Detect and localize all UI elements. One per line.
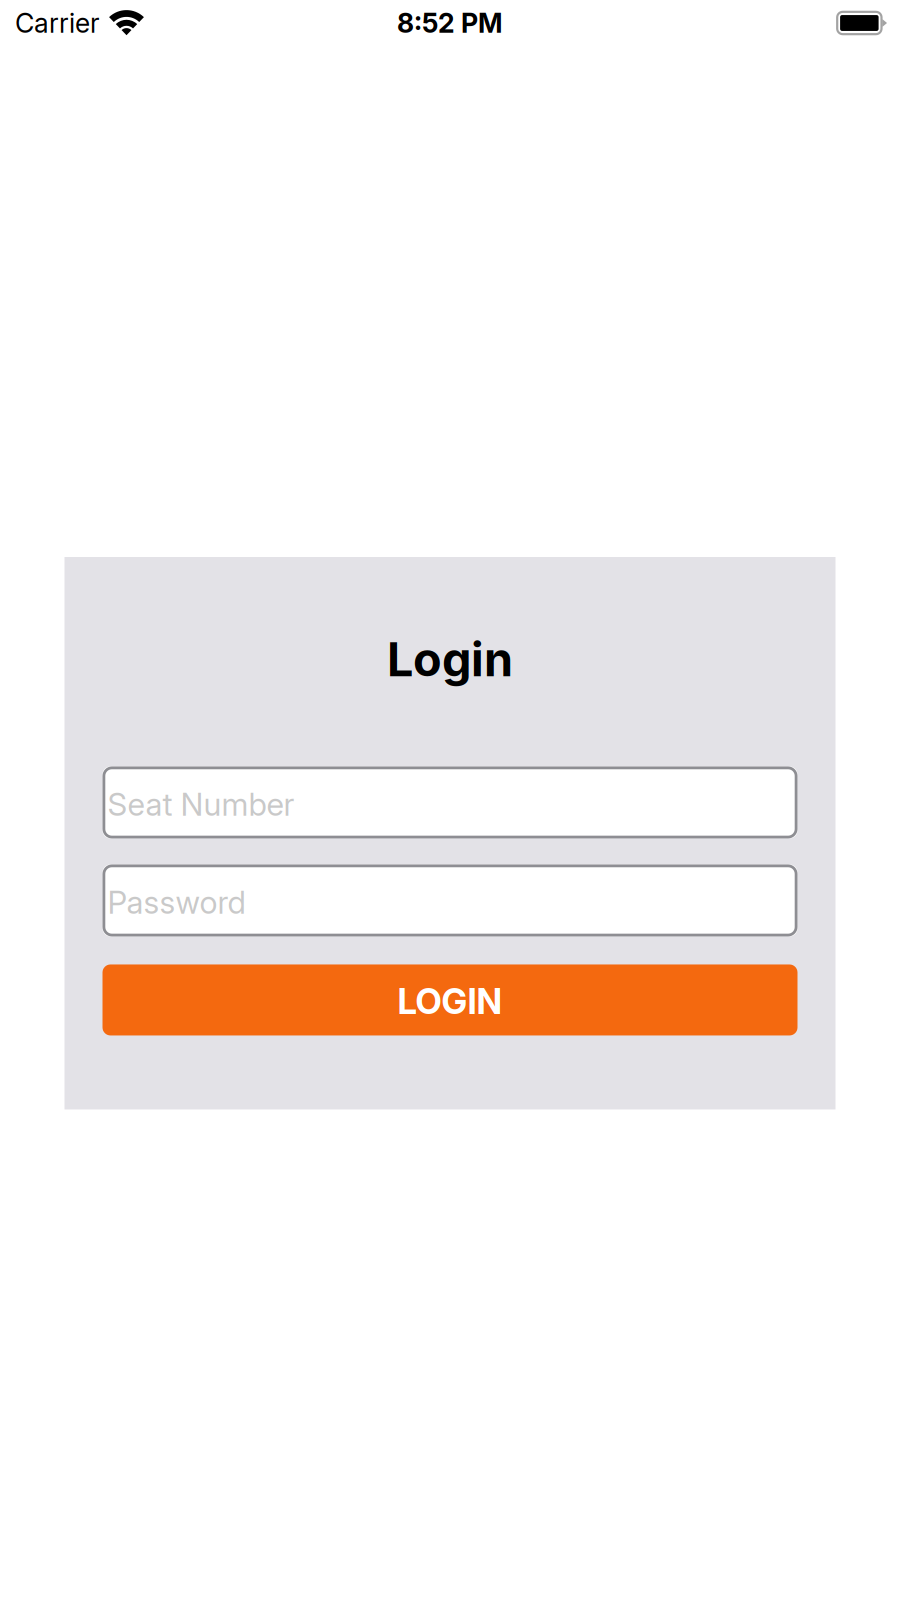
staticText: Login: [387, 631, 513, 687]
staticText: Password: [107, 883, 245, 921]
button[interactable]: LOGIN: [102, 964, 797, 1035]
button[interactable]: Password: [102, 864, 797, 936]
staticText: 8:52 PM: [397, 7, 503, 39]
button[interactable]: Seat Number: [102, 766, 797, 838]
staticText: Carrier: [15, 7, 100, 39]
staticText: Seat Number: [107, 785, 294, 823]
staticText: LOGIN: [397, 980, 502, 1022]
